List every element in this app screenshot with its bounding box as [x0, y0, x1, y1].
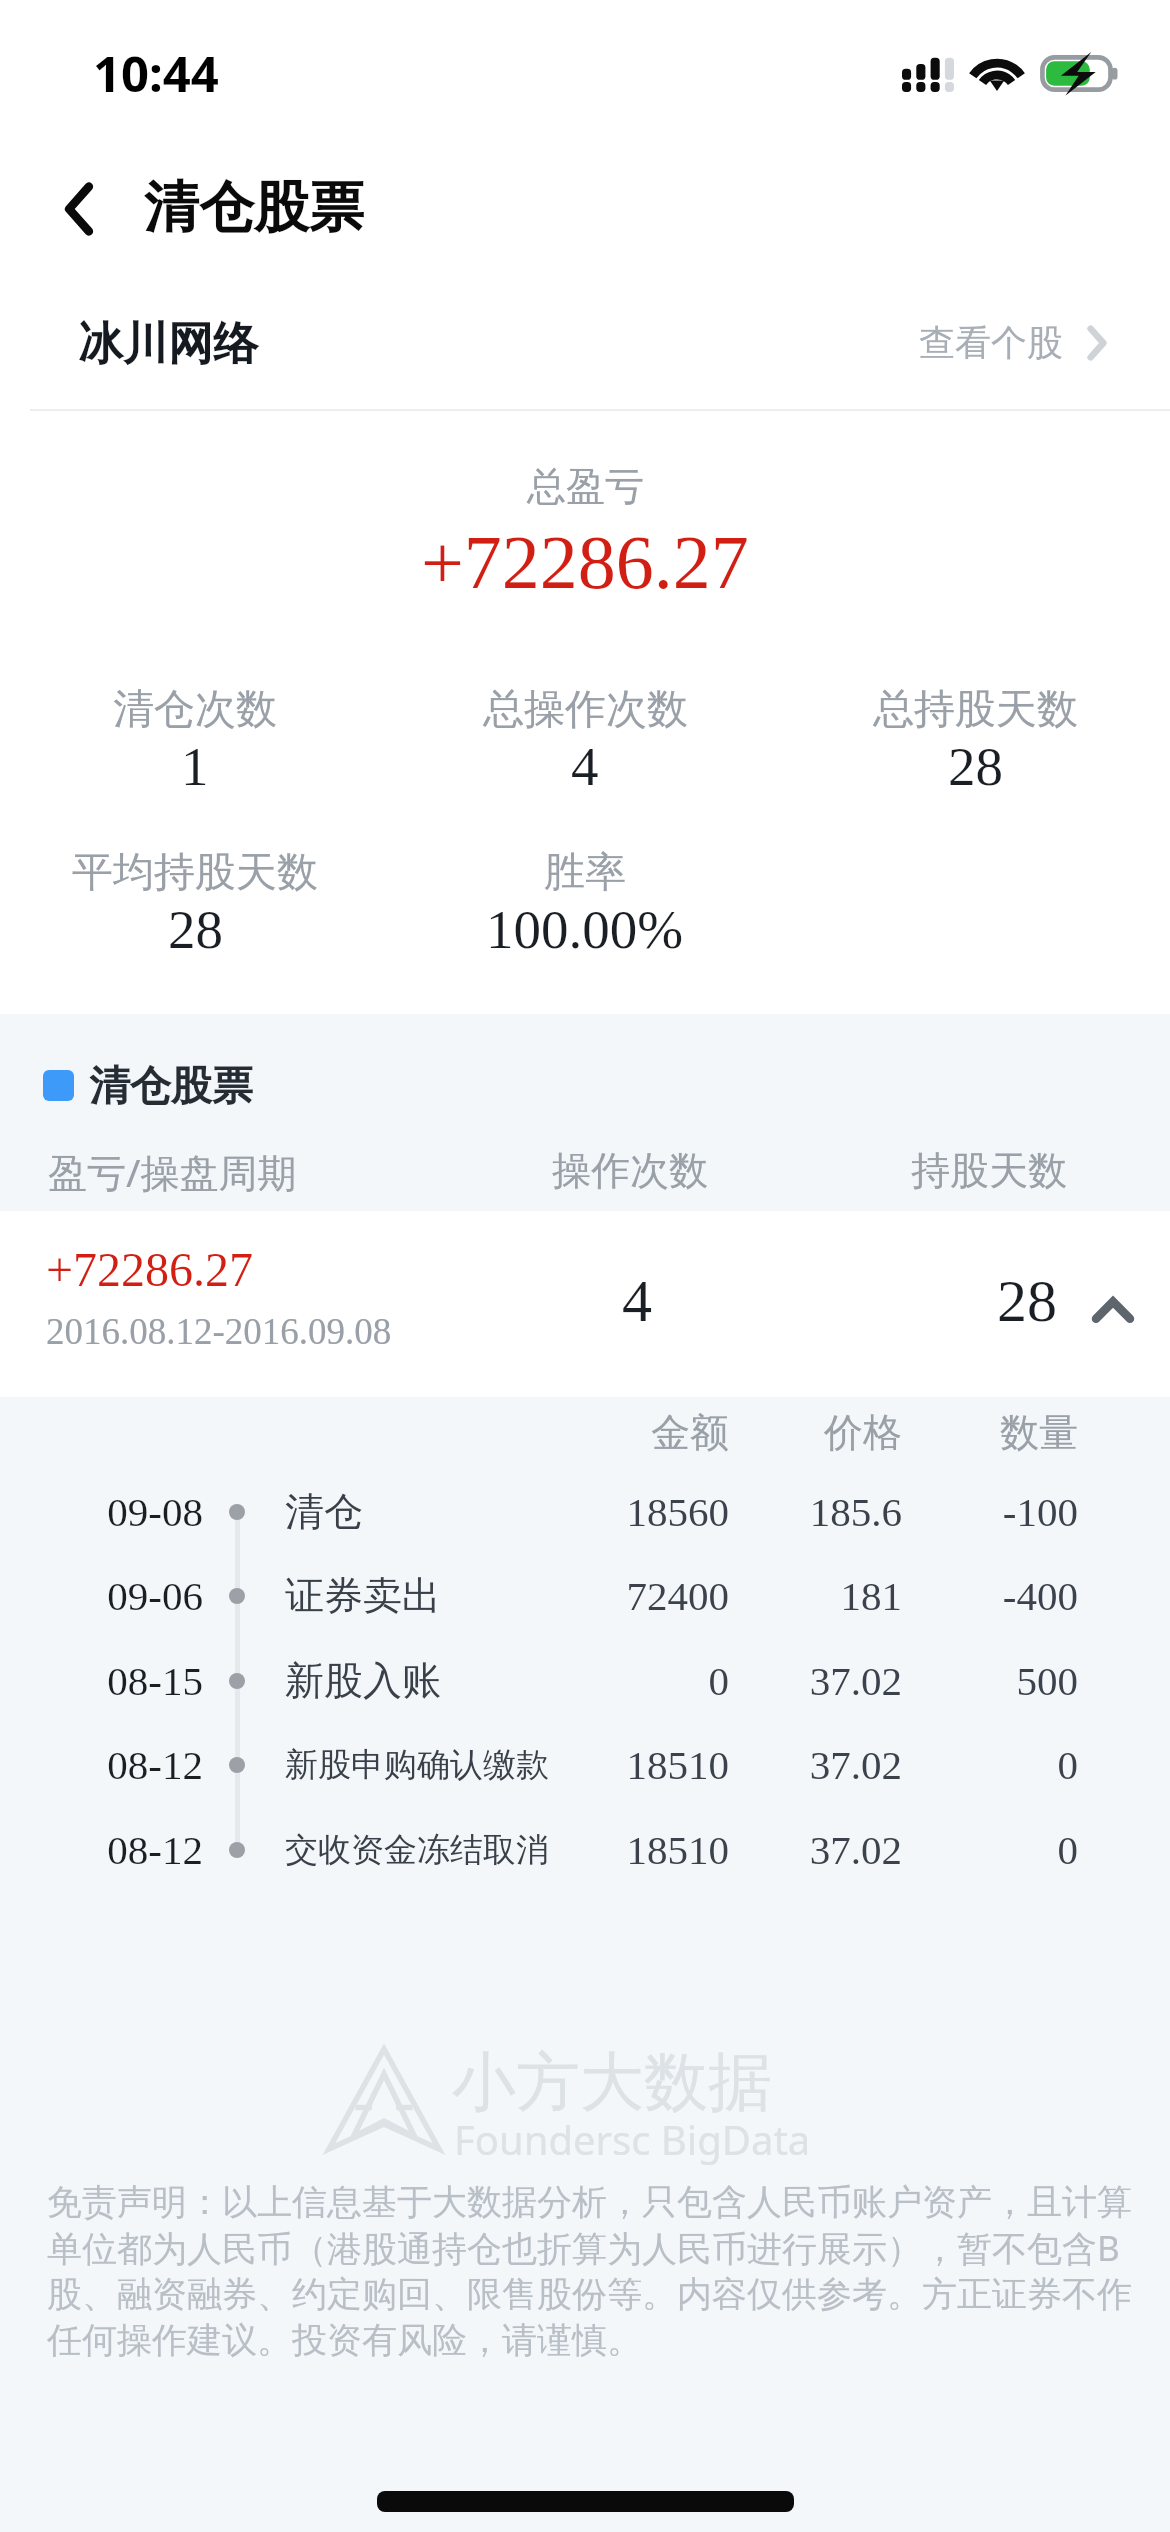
staticText: Foundersc BigData: [454, 2112, 811, 2166]
staticText: 37.02: [809, 1827, 902, 1872]
staticText: 数量: [0, 1408, 1078, 1457]
staticText: 证券卖出: [285, 1571, 441, 1620]
staticText: 小方大数据: [452, 2042, 772, 2123]
staticText: 08-15: [0, 1658, 203, 1703]
staticText: 08-12: [0, 1827, 203, 1872]
staticText: 持股天数: [911, 1146, 1067, 1195]
staticText: 金额: [0, 1408, 729, 1457]
staticText: 胜率: [544, 847, 626, 899]
staticText: 清仓次数: [113, 684, 277, 736]
staticText: 价格: [0, 1408, 902, 1457]
button[interactable]: Collapse details: [1075, 1279, 1148, 1341]
staticText: 盈亏/操盘周期: [48, 1145, 297, 1198]
staticText: 清仓股票: [144, 173, 364, 242]
staticText: 37.02: [809, 1742, 902, 1787]
staticText: 0: [1057, 1742, 1078, 1787]
staticText: 37.02: [809, 1658, 902, 1703]
staticText: 免责声明：以上信息基于大数据分析，只包含人民币账户资产，且计算单位都为人民币（港…: [47, 2180, 1140, 2363]
staticText: 冰川网络: [78, 316, 258, 373]
staticText: -100: [1002, 1489, 1078, 1534]
staticText: 新股入账: [285, 1656, 441, 1705]
button[interactable]: 查看个股: [919, 278, 1170, 410]
staticText: +72286.27: [421, 520, 749, 604]
button[interactable]: 09-08: [0, 1469, 1170, 1554]
staticText: 09-08: [0, 1489, 203, 1534]
staticText: 10:44: [93, 40, 219, 107]
staticText: 4: [622, 1268, 652, 1334]
button[interactable]: 09-06: [0, 1553, 1170, 1638]
staticText: 0: [708, 1658, 729, 1703]
staticText: 平均持股天数: [72, 847, 318, 899]
staticText: 18560: [626, 1489, 729, 1534]
staticText: 08-12: [0, 1742, 203, 1787]
staticText: 0: [1057, 1827, 1078, 1872]
staticText: 总操作次数: [483, 684, 688, 736]
staticText: 100.00%: [486, 899, 684, 960]
staticText: 2016.08.12-2016.09.08: [46, 1311, 392, 1352]
staticText: 新股申购确认缴款: [285, 1744, 549, 1786]
staticText: 查看个股: [919, 320, 1063, 365]
staticText: 181: [840, 1573, 902, 1618]
button[interactable]: 08-12: [0, 1807, 1170, 1892]
button[interactable]: 08-12: [0, 1722, 1170, 1807]
button[interactable]: Back: [29, 159, 129, 259]
staticText: +72286.27: [46, 1243, 254, 1296]
staticText: 18510: [626, 1742, 729, 1787]
staticText: 1: [181, 736, 209, 797]
staticText: 总持股天数: [873, 684, 1078, 736]
staticText: 清仓: [285, 1487, 363, 1536]
staticText: 总盈亏: [527, 462, 644, 511]
button[interactable]: +72286.27: [0, 1211, 1170, 1397]
staticText: -400: [1002, 1573, 1078, 1618]
staticText: 4: [571, 736, 599, 797]
staticText: 交收资金冻结取消: [285, 1829, 549, 1871]
staticText: 500: [1016, 1658, 1078, 1703]
staticText: 28: [948, 736, 1003, 797]
staticText: 28: [168, 899, 223, 960]
staticText: 09-06: [0, 1573, 203, 1618]
staticText: 185.6: [809, 1489, 902, 1534]
staticText: 18510: [626, 1827, 729, 1872]
staticText: 72400: [626, 1573, 729, 1618]
staticText: 操作次数: [552, 1146, 708, 1195]
staticText: 28: [997, 1268, 1057, 1334]
staticText: 清仓股票: [89, 1061, 253, 1113]
button[interactable]: 08-15: [0, 1638, 1170, 1723]
